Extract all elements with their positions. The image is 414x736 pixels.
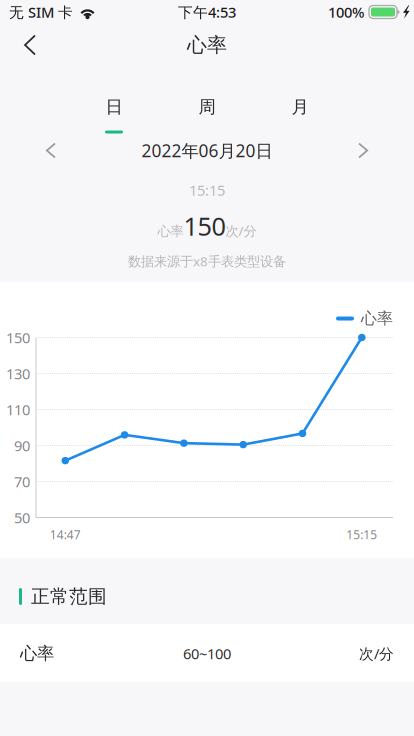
staticText: 无 SIM 卡 — [9, 2, 73, 22]
staticText: 15:15 — [189, 180, 225, 200]
staticText: 60~100 — [183, 644, 231, 663]
staticText: 15:15 — [346, 526, 377, 542]
staticText: 周 — [198, 96, 215, 118]
button[interactable]: 返回 — [8, 24, 52, 66]
staticText: 下午4:53 — [178, 2, 236, 22]
staticText: 正常范围 — [31, 585, 107, 608]
staticText: 数据来源于x8手表类型设备 — [128, 252, 286, 270]
staticText: 心率 — [157, 223, 183, 240]
button[interactable]: 月 — [260, 66, 340, 136]
staticText: 日 — [105, 96, 122, 118]
staticText: 2022年06月20日 — [141, 139, 272, 162]
staticText: 90 — [14, 436, 30, 455]
staticText: 14:47 — [50, 526, 81, 542]
staticText: 次/分 — [225, 222, 256, 240]
button[interactable]: 日 — [74, 66, 154, 136]
button[interactable]: 周 — [167, 66, 247, 136]
staticText: 70 — [14, 472, 30, 491]
staticText: 110 — [6, 400, 30, 419]
button[interactable]: 前一天 — [29, 130, 73, 170]
staticText: 150 — [183, 209, 225, 243]
staticText: 月 — [291, 96, 308, 118]
staticText: 次/分 — [359, 644, 394, 663]
staticText: 130 — [6, 364, 30, 383]
staticText: 心率 — [187, 33, 227, 57]
staticText: 心率 — [20, 643, 54, 664]
staticText: 心率 — [361, 309, 393, 328]
staticText: 50 — [14, 508, 30, 527]
button[interactable]: 后一天 — [341, 130, 385, 170]
staticText: 100% — [328, 2, 364, 22]
staticText: 150 — [6, 328, 30, 347]
